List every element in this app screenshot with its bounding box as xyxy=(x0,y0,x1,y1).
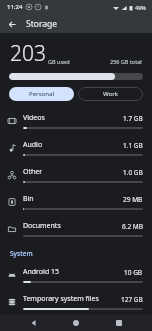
staticText: 1.1 GB xyxy=(123,141,143,150)
button[interactable]: Documents xyxy=(0,215,152,242)
button[interactable]: Bin xyxy=(0,188,152,215)
staticText: 127 GB xyxy=(121,295,143,304)
staticText: Documents xyxy=(23,221,61,231)
staticText: System xyxy=(10,249,33,258)
staticText: 256 GB total xyxy=(110,58,142,65)
button[interactable]: Audio xyxy=(0,134,152,161)
button[interactable]: Android 15 xyxy=(0,261,152,288)
staticText: 11:24 xyxy=(7,3,23,11)
staticText: GB used xyxy=(48,58,70,65)
staticText: 29 MB xyxy=(123,195,143,204)
staticText: Personal xyxy=(29,90,55,98)
button[interactable]: Recent apps xyxy=(110,315,128,331)
staticText: Other xyxy=(23,167,43,177)
staticText: Audio xyxy=(23,140,43,150)
staticText: Storage xyxy=(26,18,58,30)
button[interactable]: Other xyxy=(0,161,152,188)
button[interactable]: Home xyxy=(67,315,85,331)
staticText: 1.0 GB xyxy=(123,168,143,177)
staticText: 10 GB xyxy=(124,268,143,277)
button[interactable]: Work xyxy=(78,87,143,101)
staticText: Videos xyxy=(23,113,45,123)
button[interactable]: Back xyxy=(25,315,43,331)
staticText: 6.2 MB xyxy=(122,222,143,231)
button[interactable]: Temporary system files xyxy=(0,288,152,315)
staticText: Work xyxy=(103,90,119,98)
staticText: Bin xyxy=(23,194,34,204)
staticText: 203 xyxy=(10,39,46,68)
button[interactable]: Personal xyxy=(9,87,74,101)
staticText: Temporary system files xyxy=(23,294,99,304)
staticText: 49% xyxy=(135,4,146,11)
staticText: 1.7 GB xyxy=(123,114,143,123)
button[interactable]: Videos xyxy=(0,107,152,134)
button[interactable]: Back xyxy=(4,16,20,32)
staticText: Android 15 xyxy=(23,267,60,277)
